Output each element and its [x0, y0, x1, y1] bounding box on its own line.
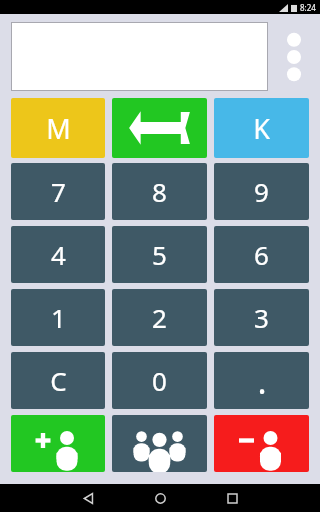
staticText: 0 [152, 363, 167, 398]
staticText: 9 [254, 174, 269, 209]
button[interactable]: 1 [11, 289, 105, 346]
button[interactable]: 7 [11, 163, 105, 220]
button[interactable]: K [214, 98, 309, 158]
button[interactable]: 5 [112, 226, 207, 283]
button[interactable]: Add contact [11, 415, 105, 472]
button[interactable]: Backspace [112, 98, 207, 158]
staticText: 6 [254, 237, 269, 272]
button[interactable]: 8 [112, 163, 207, 220]
staticText: K [253, 110, 270, 147]
button[interactable]: M [11, 98, 105, 158]
staticText: 1 [51, 300, 66, 335]
button[interactable]: Contacts [112, 415, 207, 472]
staticText: 5 [152, 237, 167, 272]
staticText: 2 [152, 300, 167, 335]
staticText: M [46, 110, 71, 147]
button[interactable]: 9 [214, 163, 309, 220]
button[interactable]: More options [268, 22, 320, 91]
button[interactable]: Remove contact [214, 415, 309, 472]
button[interactable]: 3 [214, 289, 309, 346]
staticText: 3 [254, 300, 269, 335]
button[interactable]: C [11, 352, 105, 409]
button[interactable]: Home [124, 484, 196, 512]
button[interactable]: 4 [11, 226, 105, 283]
button[interactable]: 2 [112, 289, 207, 346]
staticText: 8:24 [300, 2, 316, 13]
staticText: 8 [152, 174, 167, 209]
staticText: 4 [51, 237, 66, 272]
button[interactable]: 6 [214, 226, 309, 283]
staticText: C [50, 363, 67, 398]
staticText: . [257, 358, 267, 404]
staticText: 7 [51, 174, 66, 209]
button[interactable]: Back [52, 484, 124, 512]
button[interactable]: . [214, 352, 309, 409]
button[interactable]: Recent apps [196, 484, 268, 512]
button[interactable] [11, 22, 268, 91]
button[interactable]: 0 [112, 352, 207, 409]
